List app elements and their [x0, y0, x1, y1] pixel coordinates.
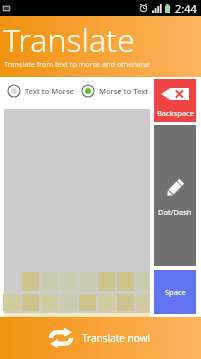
button[interactable]: Space: [154, 270, 196, 314]
other: Translate now: [50, 327, 72, 349]
button[interactable]: Text to Morse: [7, 84, 74, 98]
staticText: Translate from text to morse and otherwi…: [4, 59, 151, 69]
staticText: Translate now!: [82, 331, 151, 345]
staticText: Text to Morse: [25, 86, 74, 96]
button[interactable]: Dot/Dash: [154, 125, 196, 266]
button[interactable]: Morse to Text: [81, 84, 148, 98]
staticText: Dot/Dash: [158, 207, 192, 217]
button[interactable]: Backspace: [154, 79, 196, 122]
staticText: Morse to Text: [99, 86, 148, 96]
staticText: 2:44: [175, 1, 197, 16]
staticText: Backspace: [157, 108, 194, 118]
staticText: Space: [165, 287, 186, 297]
staticText: Translate: [3, 18, 135, 62]
button[interactable]: Translate now: [0, 317, 201, 359]
